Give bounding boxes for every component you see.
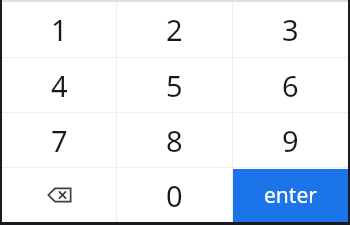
- button[interactable]: 9: [233, 113, 348, 167]
- staticText: 1: [51, 10, 68, 49]
- button[interactable]: 7: [2, 113, 116, 167]
- button[interactable]: 2: [117, 2, 232, 57]
- staticText: 9: [282, 121, 299, 160]
- button[interactable]: enter: [233, 169, 348, 222]
- button[interactable]: 0: [117, 168, 232, 222]
- button[interactable]: 8: [117, 113, 232, 167]
- staticText: enter: [264, 181, 317, 210]
- button[interactable]: Backspace: [2, 168, 116, 222]
- staticText: 8: [166, 121, 183, 160]
- staticText: 6: [282, 66, 299, 105]
- staticText: 0: [166, 176, 183, 215]
- button[interactable]: 1: [2, 2, 116, 57]
- staticText: 3: [282, 10, 299, 49]
- button[interactable]: 4: [2, 58, 116, 112]
- staticText: 4: [51, 66, 68, 105]
- staticText: 7: [51, 121, 68, 160]
- staticText: 2: [166, 10, 183, 49]
- button[interactable]: 6: [233, 58, 348, 112]
- button[interactable]: 5: [117, 58, 232, 112]
- staticText: 5: [166, 66, 183, 105]
- button[interactable]: 3: [233, 2, 348, 57]
